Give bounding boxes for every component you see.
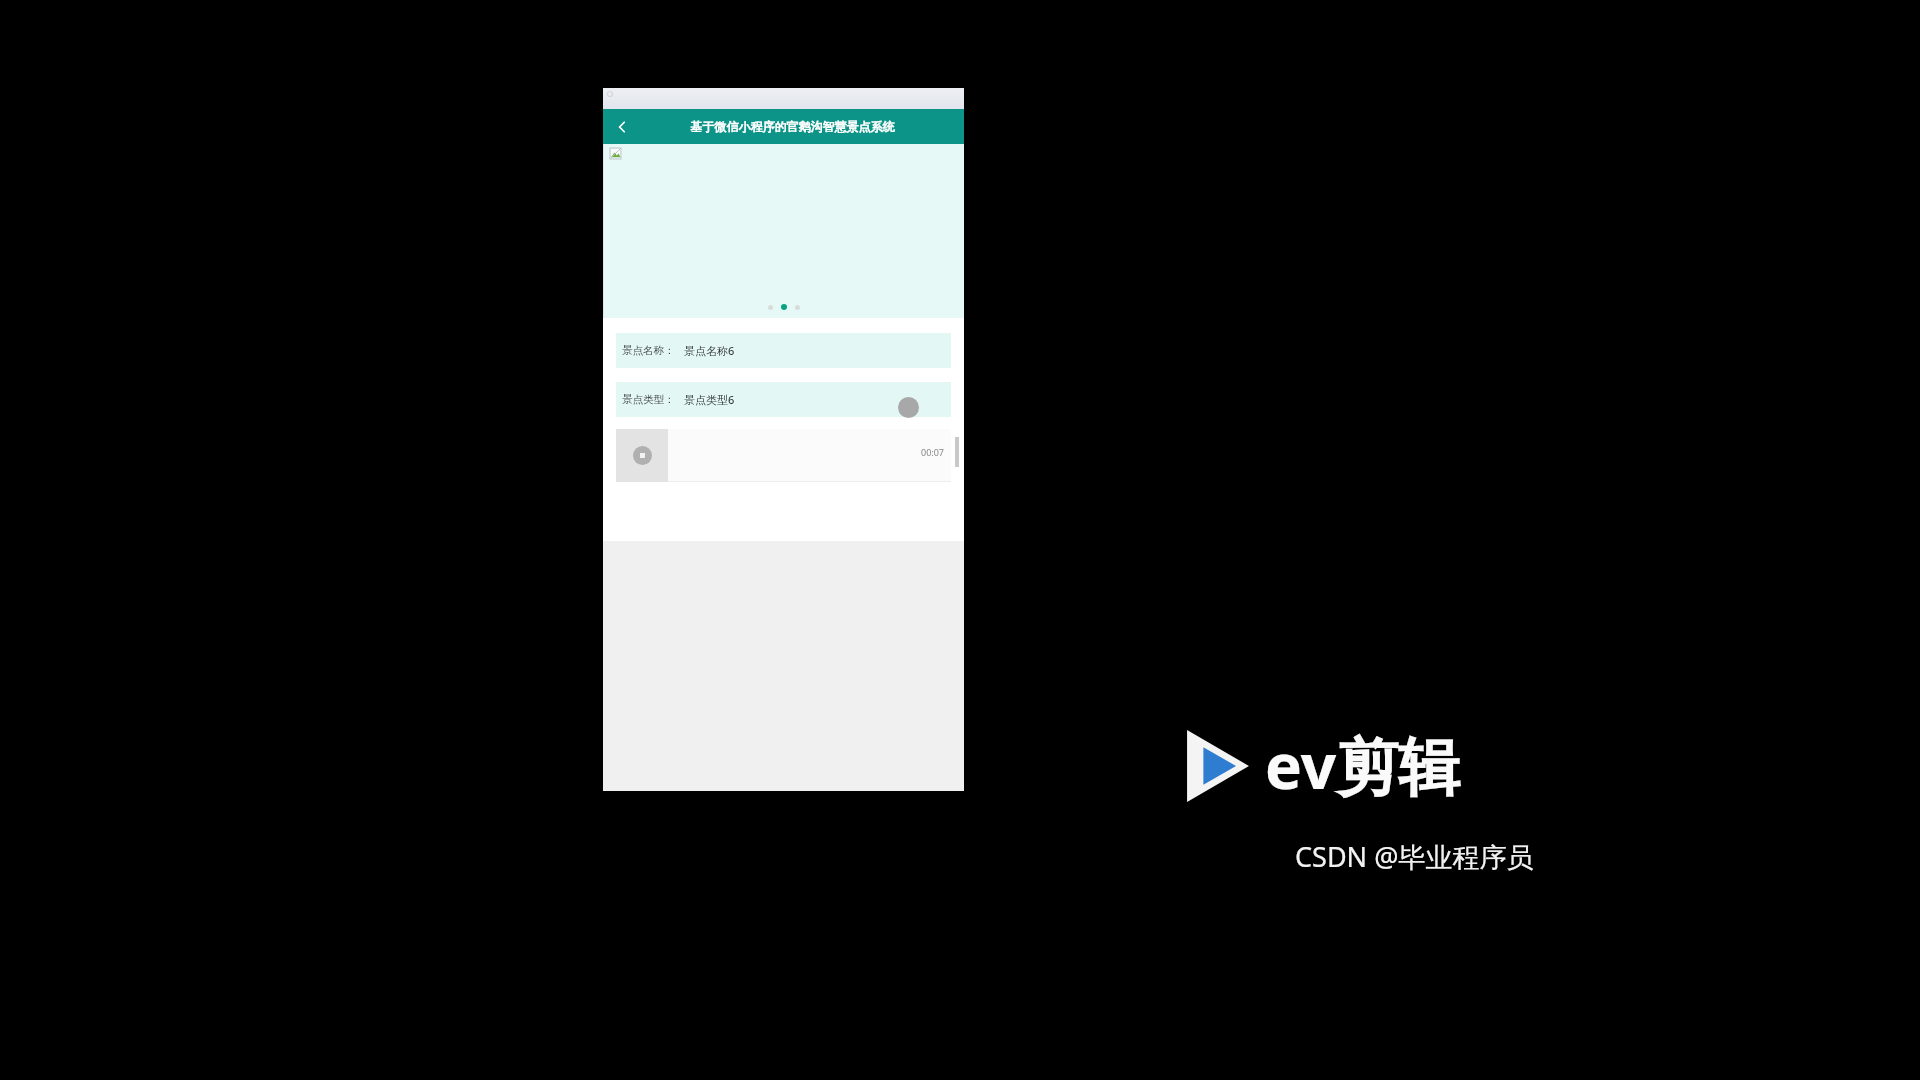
staticText: 景点名称：: [622, 344, 675, 357]
staticText: 景点类型6: [684, 392, 735, 407]
button[interactable]: [781, 304, 787, 310]
staticText: 景点类型：: [622, 393, 675, 406]
staticText: ev剪辑: [1265, 723, 1461, 808]
staticText: 00:07: [921, 446, 945, 458]
staticText: 景点名称6: [684, 343, 735, 358]
button[interactable]: 景点名称：: [616, 333, 951, 368]
button[interactable]: [603, 144, 964, 318]
button[interactable]: Seek handle: [898, 397, 919, 418]
button[interactable]: [768, 305, 773, 310]
button[interactable]: Stop audio: [616, 429, 668, 482]
button[interactable]: 景点类型：: [616, 382, 951, 417]
staticText: 基于微信小程序的官鹅沟智慧景点系统: [641, 119, 944, 134]
button[interactable]: [795, 305, 800, 310]
button[interactable]: Back: [603, 109, 641, 144]
staticText: CSDN @毕业程序员: [1295, 838, 1534, 875]
button[interactable]: 00:07: [668, 429, 951, 482]
